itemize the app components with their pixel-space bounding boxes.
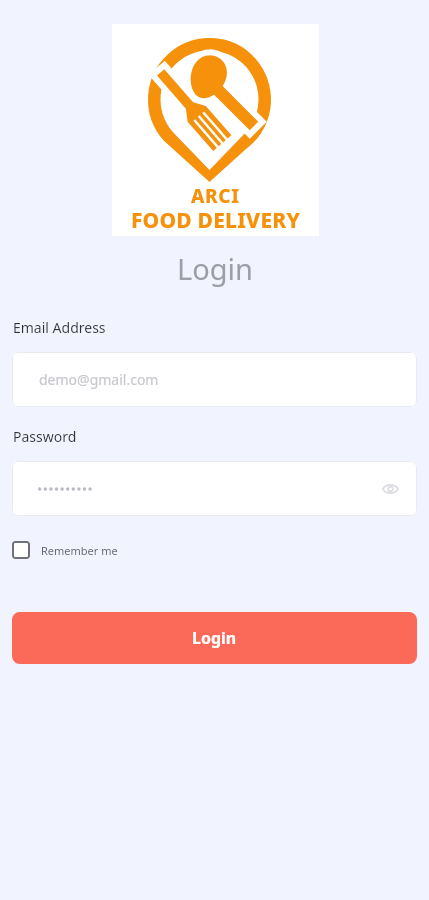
staticText: ARCI [191,183,240,209]
staticText: Remember me [41,543,118,558]
staticText: Login [192,627,237,649]
staticText: Password [13,427,77,446]
staticText: Login [177,249,253,288]
staticText: demo@gmail.com [39,370,159,389]
staticText: Email Address [13,318,106,337]
staticText: FOOD DELIVERY [131,206,301,235]
button[interactable]: Login [12,612,417,664]
button[interactable]: Show password [377,476,403,502]
button[interactable]: demo@gmail.com [12,352,417,407]
button[interactable]: Show password [12,461,417,516]
button[interactable]: Remember me [12,538,118,562]
